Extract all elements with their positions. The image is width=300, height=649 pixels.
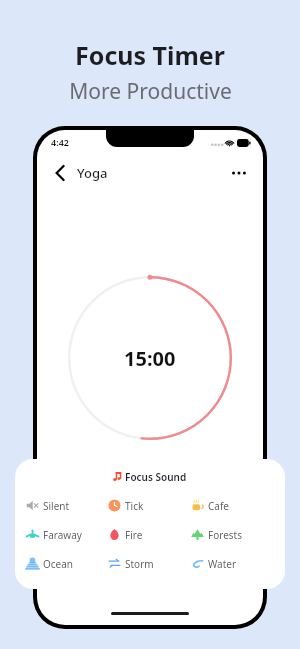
button[interactable]: Silent — [26, 491, 108, 520]
button[interactable]: More options — [227, 161, 251, 185]
button[interactable]: Tick — [108, 491, 191, 520]
staticText: Water — [208, 557, 237, 571]
button[interactable]: Water — [191, 549, 274, 578]
staticText: Cafe — [208, 499, 230, 513]
staticText: Yoga — [77, 164, 108, 182]
staticText: Forests — [208, 528, 242, 542]
staticText: 4:42 — [51, 136, 69, 148]
button[interactable]: Ocean — [26, 549, 108, 578]
staticText: Tick — [125, 499, 144, 513]
button[interactable]: Cafe — [191, 491, 274, 520]
button[interactable]: Fire — [108, 520, 191, 549]
staticText: Fire — [125, 528, 143, 542]
staticText: Focus Timer — [75, 38, 225, 72]
button[interactable]: Back — [49, 162, 71, 184]
button[interactable]: Timer 15:00 — [68, 276, 232, 440]
button[interactable]: Forests — [191, 520, 274, 549]
staticText: Silent — [43, 499, 70, 513]
staticText: Ocean — [43, 557, 74, 571]
button[interactable]: Storm — [108, 549, 191, 578]
staticText: More Productive — [69, 77, 232, 106]
staticText: 15:00 — [124, 345, 176, 372]
staticText: Storm — [125, 557, 154, 571]
staticText: Focus Sound — [125, 470, 187, 484]
staticText: Faraway — [43, 528, 82, 542]
button[interactable]: Faraway — [26, 520, 108, 549]
